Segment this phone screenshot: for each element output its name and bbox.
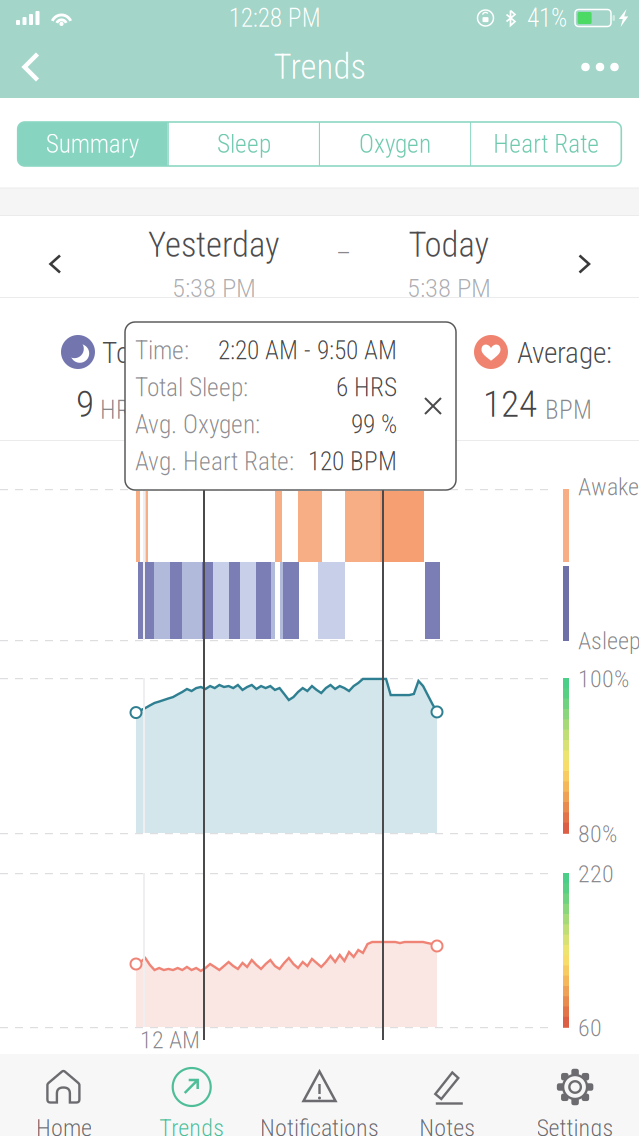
staticText: 2:20 AM - 9:50 AM bbox=[218, 336, 397, 365]
staticText: 5:38 PM bbox=[407, 272, 491, 303]
staticText: Total Sleep: bbox=[135, 373, 248, 402]
button[interactable]: Sleep bbox=[169, 122, 319, 166]
button[interactable]: Previous day bbox=[18, 227, 92, 301]
staticText: Avg. Oxygen: bbox=[135, 410, 260, 439]
staticText: Avg. Heart Rate: bbox=[135, 447, 294, 476]
staticText: Notes bbox=[419, 1114, 475, 1136]
staticText: Heart Rate bbox=[493, 129, 599, 159]
staticText: Asleep bbox=[578, 627, 639, 655]
staticText: BPM bbox=[545, 395, 592, 425]
staticText: Today bbox=[408, 225, 489, 265]
staticText: Average: bbox=[517, 336, 612, 370]
staticText: Yesterday bbox=[148, 225, 280, 265]
staticText: 9 bbox=[76, 382, 94, 426]
button[interactable]: Next day bbox=[547, 227, 621, 301]
staticText: Awake bbox=[578, 473, 639, 501]
button[interactable]: Oxygen bbox=[320, 122, 470, 166]
staticText: Total: bbox=[102, 336, 165, 370]
staticText: 5:38 PM bbox=[172, 272, 256, 303]
button[interactable]: Heart Rate bbox=[471, 122, 621, 166]
staticText: Notifications bbox=[260, 1114, 379, 1136]
staticText: 60 bbox=[578, 1014, 602, 1042]
button[interactable]: Back bbox=[2, 36, 60, 98]
staticText: Trends bbox=[273, 47, 365, 87]
staticText: 12 AM bbox=[140, 1026, 200, 1054]
staticText: 120 BPM bbox=[308, 447, 397, 476]
staticText: Sleep bbox=[217, 129, 271, 159]
staticText: 124 bbox=[483, 382, 537, 426]
button[interactable]: Notifications bbox=[256, 1054, 383, 1136]
staticText: Summary bbox=[46, 129, 140, 159]
staticText: 6 HRS bbox=[336, 373, 397, 402]
staticText: Oxygen bbox=[359, 129, 431, 159]
staticText: – bbox=[336, 237, 351, 269]
staticText: 220 bbox=[578, 860, 614, 888]
staticText: 41% bbox=[527, 3, 567, 33]
button[interactable]: More options bbox=[562, 36, 638, 98]
button[interactable]: Settings bbox=[511, 1054, 639, 1136]
staticText: 99 % bbox=[351, 410, 397, 439]
staticText: Settings bbox=[537, 1114, 614, 1136]
staticText: Home bbox=[36, 1114, 92, 1136]
staticText: 12:28 PM bbox=[229, 3, 321, 33]
button[interactable]: Notes bbox=[383, 1054, 511, 1136]
button[interactable]: Summary bbox=[18, 122, 168, 166]
staticText: HRS bbox=[100, 395, 143, 425]
staticText: Trends bbox=[159, 1114, 224, 1136]
staticText: 80% bbox=[578, 820, 617, 848]
staticText: Time: bbox=[135, 336, 189, 365]
button[interactable]: Trends bbox=[128, 1054, 256, 1136]
button[interactable]: Close bbox=[405, 376, 461, 436]
button[interactable]: Home bbox=[0, 1054, 128, 1136]
staticText: 100% bbox=[578, 665, 629, 693]
